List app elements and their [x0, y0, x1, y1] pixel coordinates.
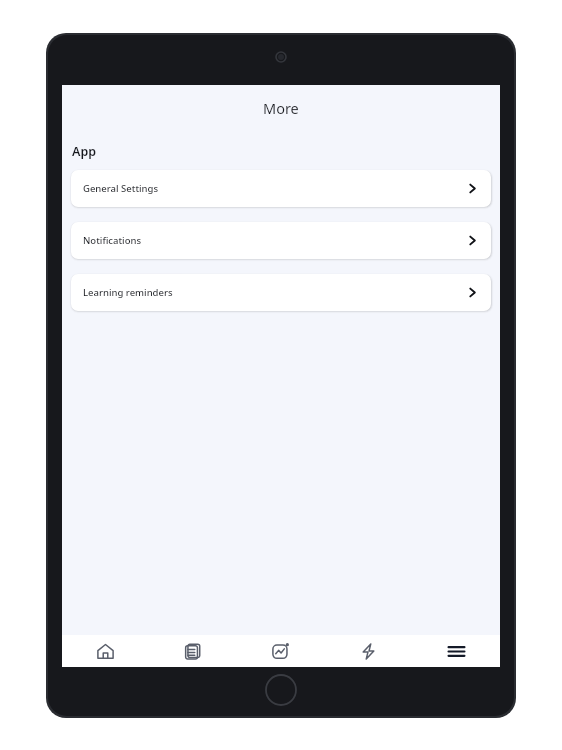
button[interactable]: Notifications: [71, 222, 491, 259]
button[interactable]: Progress: [236, 635, 324, 667]
button[interactable]: Learning reminders: [71, 274, 491, 311]
staticText: Learning reminders: [83, 286, 173, 299]
staticText: More: [263, 98, 299, 118]
button[interactable]: Home: [62, 635, 149, 667]
staticText: Notifications: [83, 234, 142, 247]
staticText: General Settings: [83, 182, 159, 195]
button[interactable]: More: [412, 635, 500, 667]
button[interactable]: Courses: [149, 635, 236, 667]
button[interactable]: Practice: [324, 635, 412, 667]
staticText: App: [72, 143, 97, 160]
button[interactable]: General Settings: [71, 170, 491, 207]
